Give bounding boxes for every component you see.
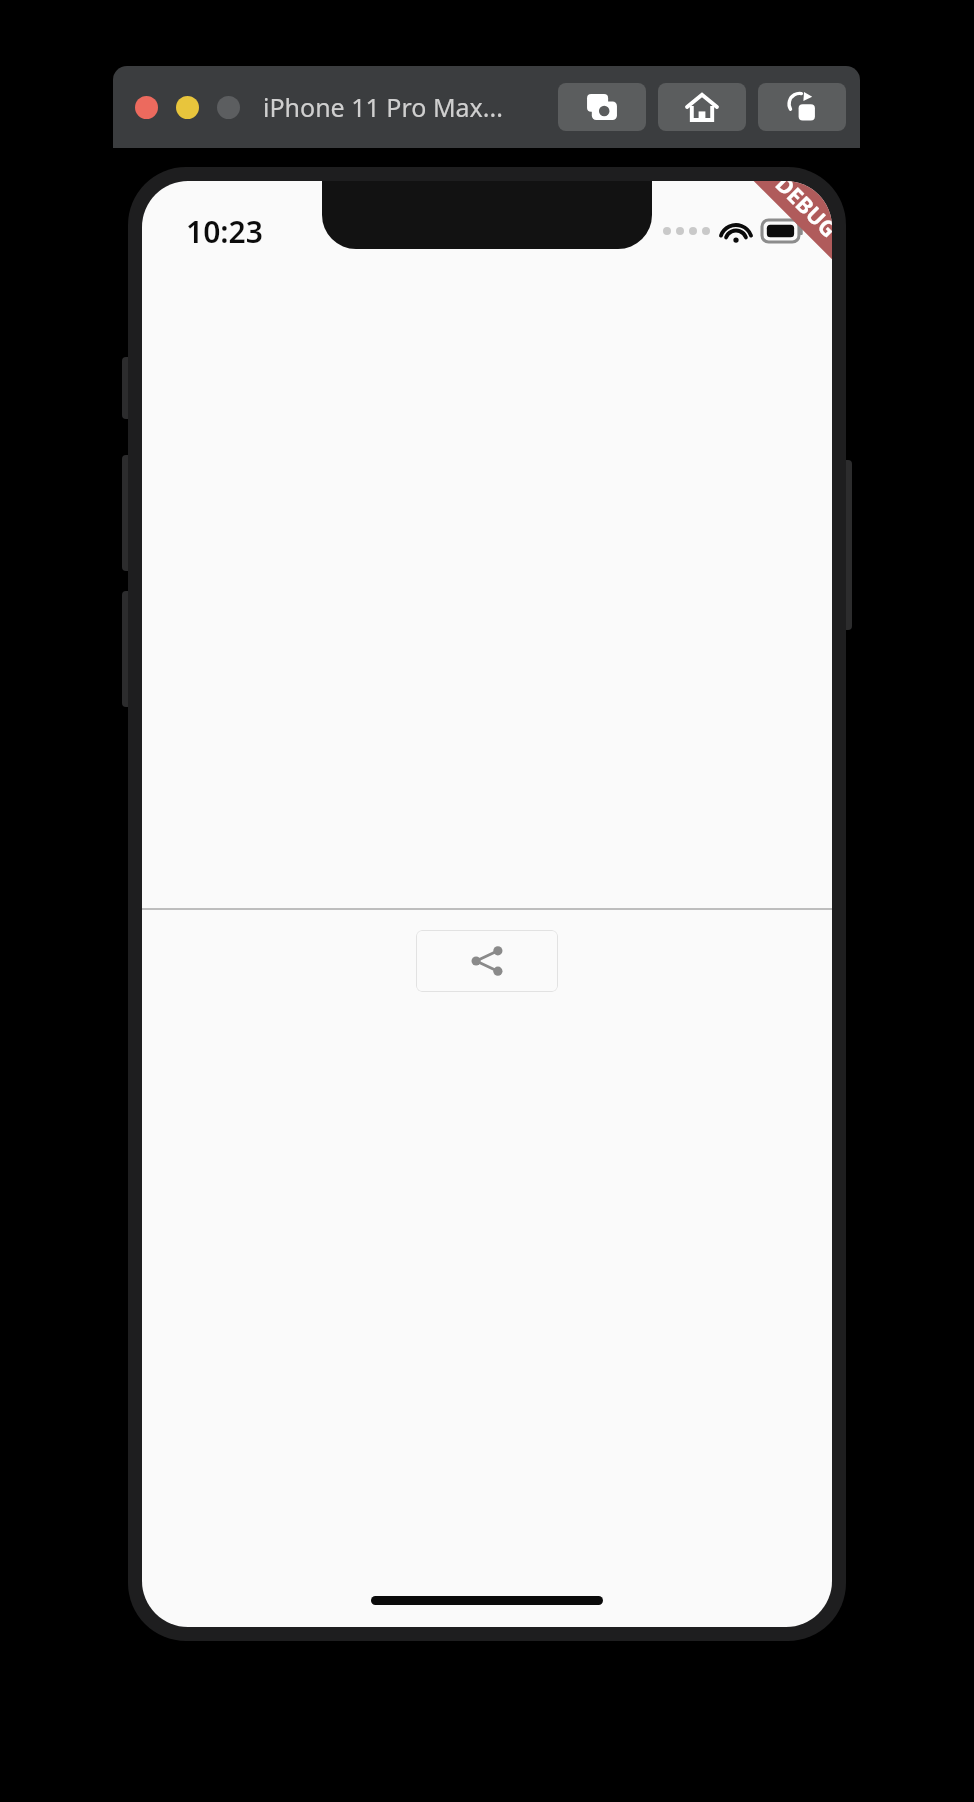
button[interactable]: Screenshot xyxy=(558,83,646,131)
button[interactable]: Rotate xyxy=(758,83,846,131)
staticText: DEBUG xyxy=(769,181,832,243)
staticText: 10:23 xyxy=(186,211,263,252)
button[interactable]: Minimise xyxy=(176,96,199,119)
button[interactable]: Share xyxy=(416,930,558,992)
button[interactable]: Zoom xyxy=(217,96,240,119)
staticText: iPhone 11 Pro Max... xyxy=(263,90,503,124)
button[interactable]: Close xyxy=(135,96,158,119)
button[interactable]: Home xyxy=(658,83,746,131)
